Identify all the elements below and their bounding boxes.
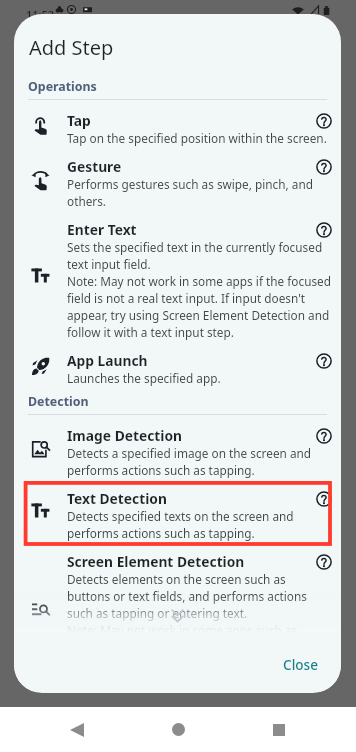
staticText: Gesture <box>67 159 122 176</box>
staticText: Tap on the specified position within the… <box>67 130 327 147</box>
staticText: Performs gestures such as swipe, pinch, … <box>67 176 336 210</box>
staticText: Tap <box>67 113 91 130</box>
staticText: Add Step <box>29 34 114 61</box>
button[interactable]: Help <box>316 113 332 129</box>
staticText: Screen Element Detection <box>67 554 245 571</box>
button[interactable]: Home <box>154 707 202 752</box>
button[interactable]: Help <box>316 222 332 238</box>
staticText: Image Detection <box>67 428 183 445</box>
staticText: Detects specified texts on the screen an… <box>67 508 336 542</box>
button[interactable]: Help <box>316 428 332 444</box>
button[interactable]: Help <box>316 554 332 570</box>
staticText: Text Detection <box>67 491 167 508</box>
button[interactable]: Back <box>53 707 101 752</box>
button[interactable]: Tap <box>19 107 336 153</box>
staticText: Detection <box>28 394 89 409</box>
staticText: 11:52 <box>26 7 55 22</box>
button[interactable]: Gesture <box>19 153 336 216</box>
button[interactable]: Help <box>316 353 332 369</box>
button[interactable]: Help <box>316 159 332 175</box>
staticText: App Launch <box>67 353 148 370</box>
staticText: Operations <box>28 79 97 94</box>
staticText: Detects a specified image on the screen … <box>67 445 336 479</box>
button[interactable]: Help <box>316 491 332 507</box>
button[interactable]: Recent apps <box>255 707 303 752</box>
staticText: Enter Text <box>67 222 137 239</box>
button[interactable]: Screen Element Detection <box>19 548 336 679</box>
button[interactable]: Image Detection <box>19 422 336 485</box>
button[interactable]: Close <box>271 649 331 681</box>
button[interactable]: App Launch <box>19 347 336 393</box>
staticText: Sets the specified text in the currently… <box>67 239 336 341</box>
staticText: Close <box>283 657 319 673</box>
button[interactable]: Text Detection <box>19 485 336 548</box>
staticText: Detects elements on the screen such as b… <box>67 571 307 673</box>
staticText: Launches the specified app. <box>67 370 221 387</box>
button[interactable]: Enter Text <box>19 216 336 347</box>
